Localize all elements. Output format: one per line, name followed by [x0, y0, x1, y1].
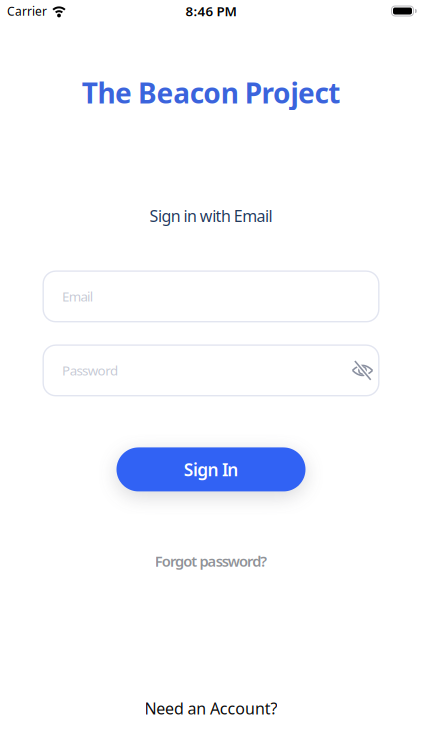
button[interactable]: Sign In	[116, 447, 305, 491]
staticText: 8:46 PM	[185, 2, 236, 20]
staticText: Password	[62, 362, 118, 379]
staticText: Forgot password?	[155, 551, 267, 571]
staticText: The Beacon Project	[82, 74, 340, 111]
button[interactable]: Need an Account?	[144, 698, 277, 719]
staticText: Email	[62, 288, 93, 305]
staticText: Need an Account?	[144, 698, 277, 719]
staticText: Sign In	[184, 458, 238, 481]
button[interactable]: Forgot password?	[155, 551, 267, 571]
button[interactable]: Password	[42, 344, 379, 396]
button[interactable]: Email	[42, 270, 379, 322]
button[interactable]: Show password	[351, 360, 373, 380]
staticText: Sign in with Email	[150, 205, 272, 226]
staticText: Carrier	[7, 3, 47, 19]
